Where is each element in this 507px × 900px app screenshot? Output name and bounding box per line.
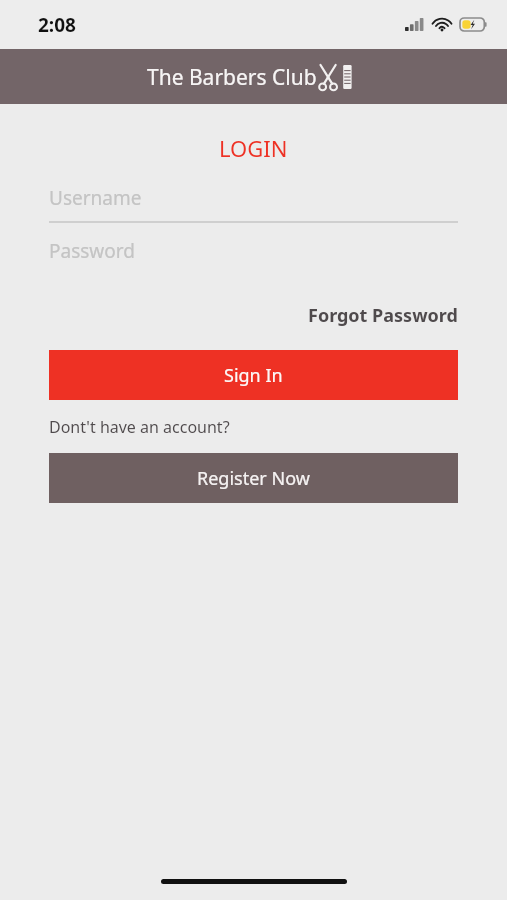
staticText: Register Now <box>197 466 310 491</box>
staticText: Forgot Password <box>308 303 458 328</box>
staticText: The Barbers Club <box>147 63 317 92</box>
button[interactable]: Register Now <box>49 453 458 503</box>
button[interactable]: Forgot Password <box>308 301 458 330</box>
staticText: Username <box>49 185 142 211</box>
staticText: Password <box>49 238 135 264</box>
button[interactable]: Sign In <box>49 350 458 400</box>
button[interactable]: Username <box>49 185 458 223</box>
staticText: LOGIN <box>219 133 288 163</box>
other: Barber scissors and comb logo <box>318 62 360 92</box>
staticText: 2:08 <box>38 12 76 38</box>
button[interactable]: Password <box>49 238 458 264</box>
staticText: Dont't have an account? <box>49 416 230 438</box>
staticText: Sign In <box>224 363 283 388</box>
